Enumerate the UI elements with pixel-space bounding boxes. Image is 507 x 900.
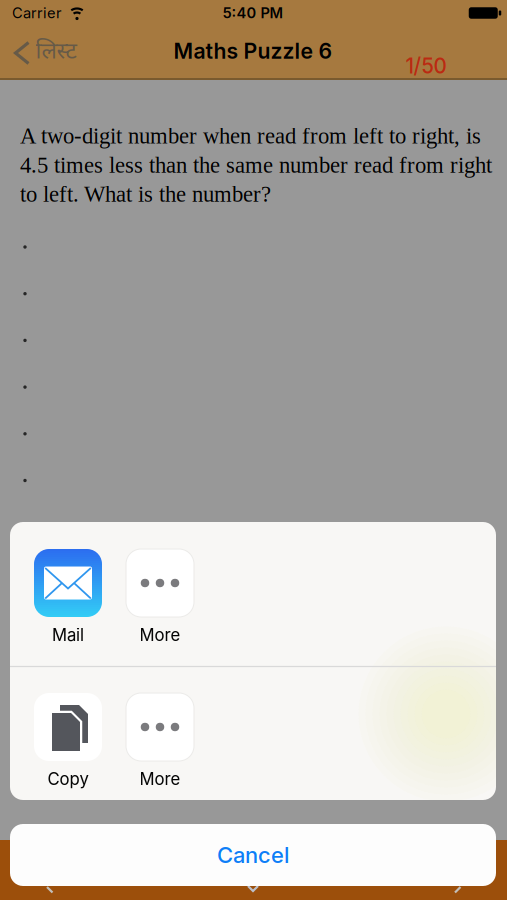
button[interactable]: More bbox=[114, 693, 206, 803]
staticText: 5:40 PM bbox=[222, 4, 283, 22]
staticText: Copy bbox=[47, 769, 88, 789]
button[interactable]: Cancel bbox=[10, 824, 496, 886]
button[interactable]: Mail bbox=[22, 549, 114, 659]
button[interactable]: More bbox=[114, 549, 206, 659]
button[interactable]: Back bbox=[15, 38, 76, 68]
staticText: Maths Puzzle 6 bbox=[173, 38, 332, 64]
staticText: A two-digit number when read from left t… bbox=[20, 123, 492, 207]
staticText: More bbox=[139, 625, 180, 645]
staticText: More bbox=[139, 769, 180, 789]
staticText: Mail bbox=[52, 625, 84, 645]
staticText: लिस्ट bbox=[35, 38, 76, 68]
staticText: 1/50 bbox=[405, 53, 446, 78]
button[interactable]: Copy bbox=[22, 693, 114, 803]
staticText: Carrier bbox=[12, 4, 62, 22]
staticText: Cancel bbox=[217, 842, 289, 868]
